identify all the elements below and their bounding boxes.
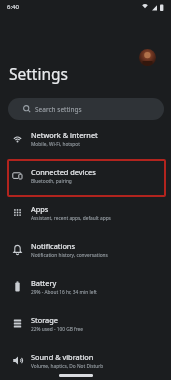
staticText: Apps (31, 204, 49, 214)
staticText: 29% - About 16 hr, 34 min left (31, 289, 97, 296)
button[interactable]: Notifications (0, 231, 171, 268)
staticText: 22% used - 100 GB free (31, 326, 83, 333)
staticText: Notification history, conversations (31, 252, 108, 259)
staticText: Assistant, recent apps, default apps (31, 215, 111, 222)
staticText: Settings (9, 63, 68, 84)
staticText: Network & internet (31, 130, 98, 140)
button[interactable]: Apps (0, 194, 171, 231)
staticText: Volume, haptics, Do Not Disturb (31, 363, 104, 370)
staticText: Storage (31, 315, 58, 325)
staticText: Sound & vibration (31, 352, 94, 362)
staticText: Connected devices (31, 167, 96, 177)
staticText: Notifications (31, 241, 75, 251)
staticText: Search settings (35, 105, 82, 114)
button[interactable]: Sound & vibration (0, 342, 171, 379)
button[interactable]: Battery (0, 268, 171, 305)
button[interactable] (139, 49, 156, 66)
button[interactable]: Connected devices (0, 157, 171, 194)
button[interactable]: Network & internet (0, 120, 171, 157)
staticText: Bluetooth, pairing (31, 178, 72, 185)
staticText: Mobile, Wi-Fi, hotspot (31, 141, 80, 148)
button[interactable]: Search settings (8, 98, 164, 120)
staticText: 6:40 (7, 3, 19, 11)
staticText: Battery (31, 278, 57, 288)
button[interactable]: Storage (0, 305, 171, 342)
